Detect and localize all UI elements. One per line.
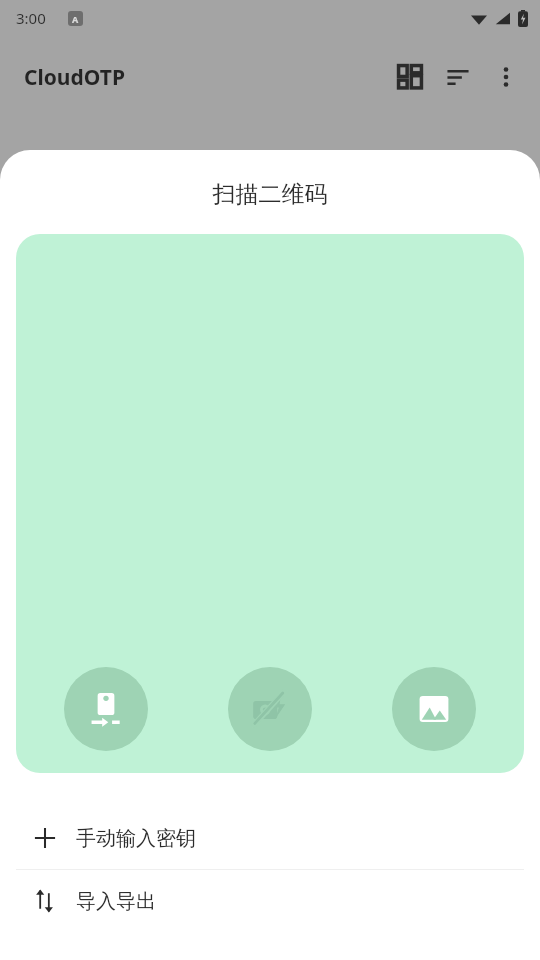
button[interactable]: 导入导出 xyxy=(0,870,540,932)
button[interactable]: Layout xyxy=(386,53,434,101)
staticText: A xyxy=(72,13,79,25)
button[interactable]: Pick from gallery xyxy=(392,667,476,751)
button[interactable]: Toggle flash xyxy=(228,667,312,751)
staticText: 导入导出 xyxy=(76,889,156,914)
button[interactable]: Switch camera xyxy=(64,667,148,751)
staticText: 3:00 xyxy=(16,8,46,28)
staticText: 扫描二维码 xyxy=(0,180,540,209)
staticText: CloudOTP xyxy=(24,63,125,92)
staticText: 手动输入密钥 xyxy=(76,826,196,851)
button[interactable]: 手动输入密钥 xyxy=(0,807,540,869)
button[interactable]: Sort xyxy=(434,53,482,101)
button[interactable]: More options xyxy=(482,53,530,101)
